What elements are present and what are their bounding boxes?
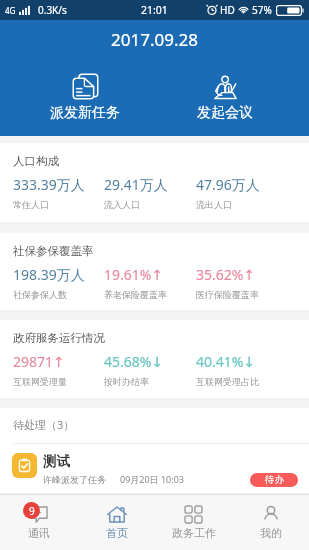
staticText: 0.3K/s (38, 3, 67, 17)
button[interactable]: 测试 (0, 444, 309, 493)
staticText: 333.39万人 (13, 175, 85, 194)
staticText: 19.61%↑ (104, 265, 164, 284)
button[interactable]: Home (78, 495, 155, 550)
staticText: 29871↑ (13, 352, 65, 371)
staticText: 互联网受理量 (13, 376, 67, 387)
button[interactable]: 政府服务运行情况 (0, 320, 309, 398)
staticText: 人口构成 (13, 154, 59, 168)
staticText: 2017.09.28 (111, 28, 198, 51)
staticText: 流入人口 (104, 199, 140, 210)
other: Profile (264, 506, 278, 523)
staticText: 待处理（3） (13, 417, 75, 432)
button[interactable]: 人口构成 (0, 143, 309, 222)
staticText: 许峰派发了任务 (43, 474, 106, 485)
button[interactable]: 社保参保覆盖率 (0, 233, 309, 310)
staticText: 47.96万人 (196, 175, 260, 194)
staticText: 40.41%↓ (196, 352, 256, 371)
staticText: 养老保险覆盖率 (104, 289, 167, 300)
staticText: 首页 (106, 526, 128, 540)
staticText: 29.41万人 (104, 175, 168, 194)
button[interactable]: Contacts (0, 495, 78, 550)
staticText: 9 (29, 504, 35, 518)
staticText: 测试 (43, 453, 70, 470)
other: Work (185, 506, 202, 523)
staticText: 互联网受理占比 (196, 376, 259, 387)
staticText: 社保参保人数 (13, 289, 67, 300)
staticText: 派发新任务 (50, 104, 120, 122)
staticText: 常住人口 (13, 199, 49, 210)
staticText: 21:01 (141, 3, 168, 17)
staticText: 4G (5, 5, 16, 16)
staticText: 通讯 (28, 526, 50, 540)
staticText: 我的 (260, 526, 282, 540)
button[interactable]: Profile (232, 495, 309, 550)
button[interactable]: Work (155, 495, 232, 550)
staticText: 09月20日 10:03 (120, 473, 184, 485)
staticText: 社保参保覆盖率 (13, 244, 94, 258)
other: Contacts (32, 506, 48, 523)
staticText: 57% (252, 3, 272, 17)
staticText: HD (220, 3, 235, 17)
staticText: 政务工作 (172, 526, 216, 540)
staticText: 发起会议 (197, 104, 253, 122)
button[interactable]: 发起会议 (175, 72, 275, 124)
staticText: 流出人口 (196, 199, 232, 210)
staticText: 医疗保险覆盖率 (196, 289, 259, 300)
staticText: 35.62%↑ (196, 265, 256, 284)
button[interactable]: 派发新任务 (28, 72, 142, 124)
staticText: 政府服务运行情况 (13, 331, 105, 345)
staticText: 45.68%↓ (104, 352, 164, 371)
other: Home (107, 506, 127, 523)
staticText: 待办 (265, 474, 284, 486)
staticText: 按时办结率 (104, 376, 149, 387)
staticText: 198.39万人 (13, 265, 85, 284)
